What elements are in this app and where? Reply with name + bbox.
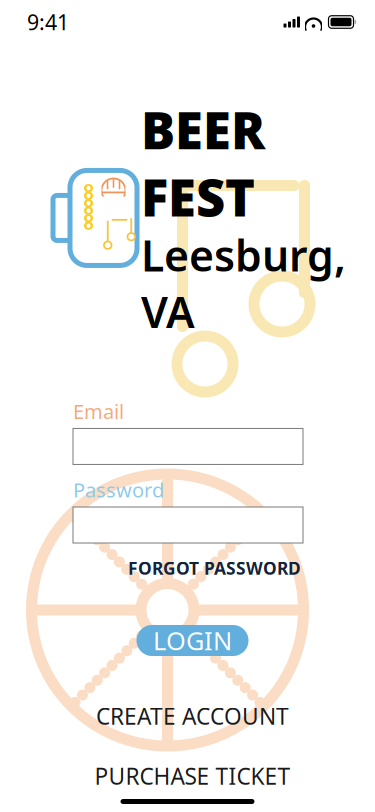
button[interactable]: CREATE ACCOUNT [77,702,307,730]
staticText: BEER FEST [141,96,265,231]
staticText: LOGIN [153,624,232,657]
staticText: Email [73,398,124,424]
button[interactable]: Email [73,428,303,464]
button[interactable]: FORGOT PASSWORD [73,555,301,581]
button[interactable]: LOGIN [136,625,248,656]
staticText: PURCHASE TICKET [94,761,290,791]
button[interactable]: PURCHASE TICKET [77,762,307,790]
staticText: Leesburg, VA [141,227,346,340]
staticText: Password [73,476,164,503]
staticText: FORGOT PASSWORD [128,556,301,579]
staticText: 9:41 [27,8,69,36]
staticText: CREATE ACCOUNT [96,701,289,731]
button[interactable]: Password [73,507,303,543]
